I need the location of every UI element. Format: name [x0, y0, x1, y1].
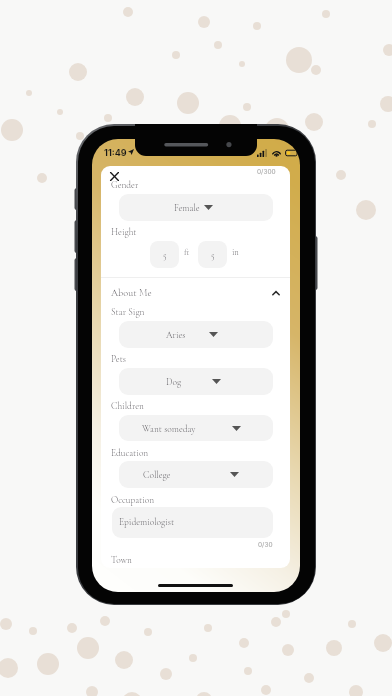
- staticText: Education: [111, 447, 149, 458]
- staticText: Want someday: [142, 423, 196, 434]
- staticText: Aries: [166, 329, 186, 340]
- button[interactable]: Epidemiologist: [112, 507, 273, 538]
- staticText: in: [232, 247, 239, 257]
- button[interactable]: Female: [119, 194, 273, 221]
- staticText: ft: [184, 247, 190, 257]
- staticText: Occupation: [111, 494, 155, 505]
- button[interactable]: Dog: [119, 368, 273, 395]
- staticText: 5: [211, 250, 215, 260]
- button[interactable]: College: [119, 461, 273, 488]
- button[interactable]: 5: [150, 241, 179, 268]
- staticText: Star Sign: [111, 306, 145, 317]
- staticText: 0/300: [257, 168, 276, 176]
- staticText: Dog: [166, 376, 182, 387]
- staticText: Height: [111, 226, 137, 237]
- staticText: Pets: [111, 353, 127, 364]
- staticText: College: [143, 469, 171, 480]
- staticText: Epidemiologist: [119, 516, 175, 527]
- staticText: Children: [111, 400, 144, 411]
- button[interactable]: Aries: [119, 321, 273, 348]
- staticText: 5: [163, 250, 167, 260]
- button[interactable]: About Me: [101, 284, 290, 302]
- staticText: 11:49: [104, 147, 127, 158]
- button[interactable]: 5: [198, 241, 227, 268]
- staticText: Female: [174, 202, 200, 213]
- button[interactable]: Close: [109, 171, 120, 182]
- button[interactable]: Want someday: [119, 415, 273, 441]
- staticText: Gender: [111, 179, 139, 190]
- staticText: Town: [111, 554, 132, 565]
- staticText: About Me: [111, 287, 152, 299]
- staticText: 0/30: [258, 541, 273, 549]
